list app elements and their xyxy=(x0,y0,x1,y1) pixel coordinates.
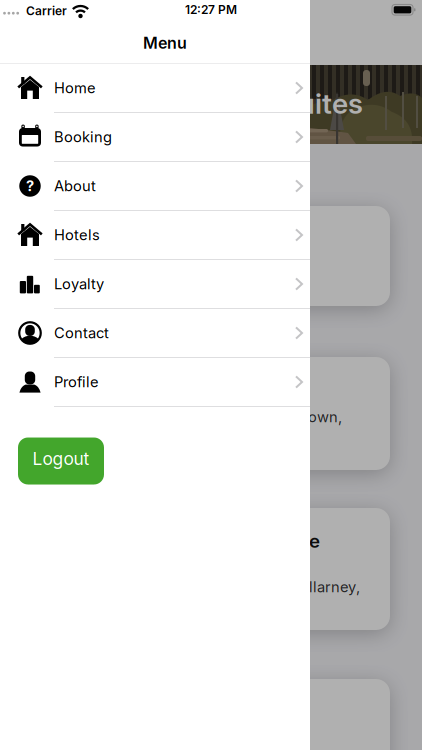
staticText: 12:27 PM xyxy=(185,2,237,17)
staticText: Loyalty xyxy=(54,275,104,293)
staticText: Home xyxy=(54,79,96,97)
staticText: ? xyxy=(26,177,34,195)
staticText: e xyxy=(309,530,320,552)
staticText: Booking xyxy=(54,128,112,146)
staticText: Menu xyxy=(143,34,187,52)
staticText: own, xyxy=(308,408,342,426)
button[interactable]: Contact xyxy=(0,308,310,357)
button[interactable]: Booking xyxy=(0,112,310,161)
button[interactable]: Hotels xyxy=(0,210,310,259)
button[interactable]: Profile xyxy=(0,357,310,406)
staticText: Logout xyxy=(32,448,89,469)
button[interactable]: Logout xyxy=(18,437,104,484)
staticText: Hotels xyxy=(54,226,100,244)
staticText: About xyxy=(54,177,96,195)
staticText: uites xyxy=(298,87,363,120)
button[interactable]: Loyalty xyxy=(0,259,310,308)
staticText: Carrier xyxy=(26,4,67,18)
button[interactable]: ? xyxy=(0,161,310,210)
staticText: Profile xyxy=(54,373,99,391)
staticText: llarney, xyxy=(309,578,360,596)
button[interactable]: Close menu xyxy=(310,0,422,750)
button[interactable]: Home xyxy=(0,63,310,112)
staticText: Contact xyxy=(54,324,109,342)
